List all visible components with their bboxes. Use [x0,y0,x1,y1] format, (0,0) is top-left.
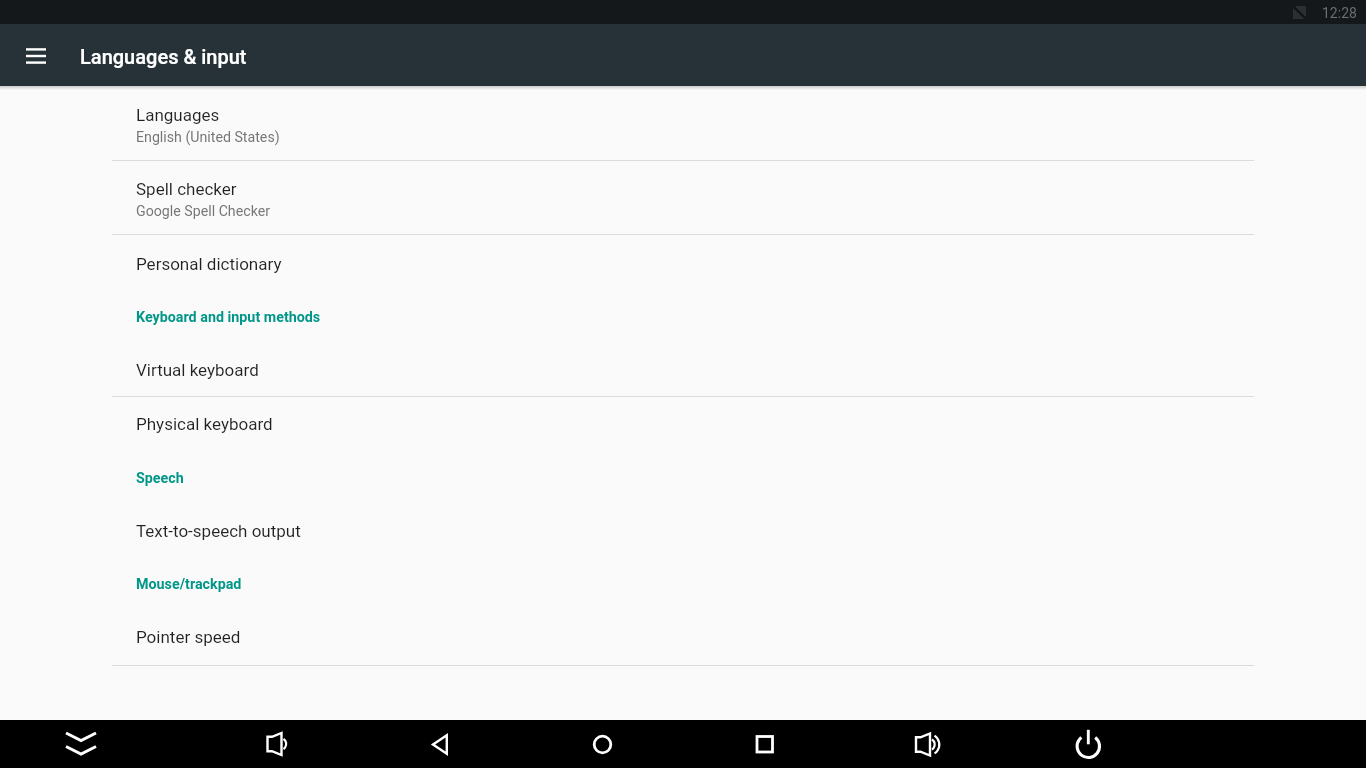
staticText: Google Spell Checker [136,203,271,220]
button[interactable] [16,37,56,77]
button[interactable]: Languages [0,86,1366,161]
staticText: Personal dictionary [136,254,282,274]
staticText: Languages & input [80,45,247,68]
staticText: Languages [136,105,220,125]
button[interactable] [1006,720,1166,768]
staticText: Pointer speed [136,627,241,647]
staticText: Text-to-speech output [136,521,301,541]
staticText: Virtual keyboard [136,360,259,380]
button[interactable]: Text-to-speech output [0,505,1366,559]
staticText: Spell checker [136,179,237,199]
button[interactable] [358,720,520,768]
button[interactable]: Pointer speed [0,611,1366,666]
button[interactable] [520,720,682,768]
button[interactable] [162,720,358,768]
staticText: English (United States) [136,129,280,146]
button[interactable]: Spell checker [0,161,1366,235]
staticText: Physical keyboard [136,414,273,434]
button[interactable] [682,720,844,768]
button[interactable] [844,720,1006,768]
button[interactable]: Virtual keyboard [0,345,1366,397]
staticText: 12:28 [1322,5,1357,21]
staticText: Speech [136,470,184,487]
button[interactable]: Physical keyboard [0,397,1366,453]
staticText: Mouse/trackpad [136,576,242,593]
button[interactable] [0,720,162,768]
staticText: Keyboard and input methods [136,309,321,326]
button[interactable]: Personal dictionary [0,235,1366,293]
